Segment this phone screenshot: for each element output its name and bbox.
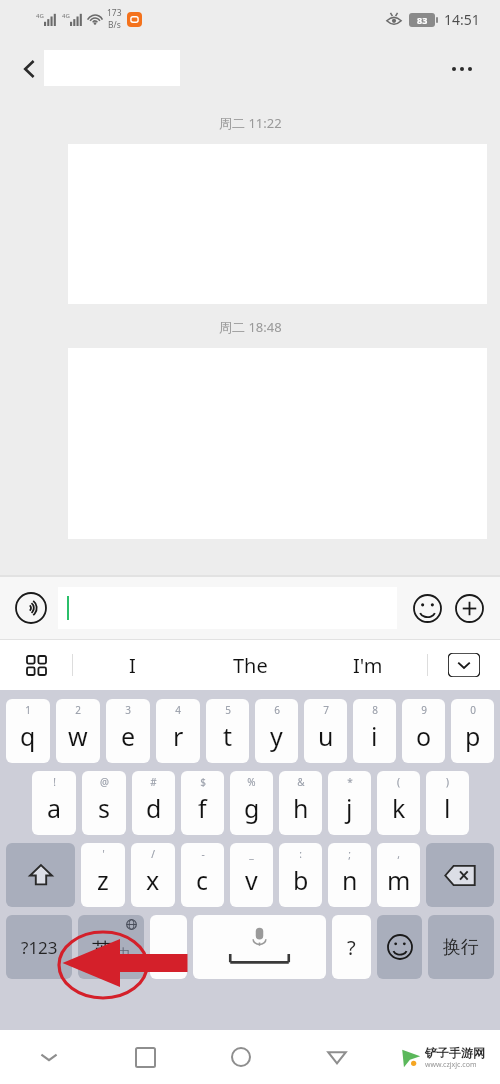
staticText: 4G [62,12,70,20]
button[interactable]: Symbols [6,915,72,979]
staticText: e [121,719,136,753]
button[interactable]: 4 [156,699,200,763]
button[interactable]: ? [332,915,371,979]
button[interactable]: & [279,771,322,835]
button[interactable]: Emoji [377,915,422,979]
button[interactable]: _ [230,843,273,907]
button[interactable]: I'm [309,640,427,690]
staticText: b [293,863,309,897]
staticText: % [247,775,256,789]
button[interactable]: , [377,843,420,907]
button[interactable]: I [73,640,191,690]
staticText: v [245,863,258,897]
button[interactable]: Hide keyboard [0,1030,97,1084]
button[interactable]: Emoji [406,587,448,629]
button[interactable]: Home [193,1030,289,1084]
button[interactable]: 7 [304,699,347,763]
button[interactable]: Switch language [78,915,144,979]
staticText: 3 [125,703,131,717]
button[interactable]: 2 [56,699,100,763]
button[interactable]: @ [82,771,126,835]
staticText: j [346,791,353,825]
button[interactable]: 1 [6,699,50,763]
staticText: * [347,775,353,789]
button[interactable]: Back [289,1030,385,1084]
button[interactable]: Keyboard menu [0,640,72,690]
button[interactable]: Backspace [426,843,494,907]
staticText: & [297,775,305,789]
staticText: h [293,791,309,825]
staticText: f [198,791,207,825]
button[interactable]: ( [377,771,420,835]
staticText: B/s [108,19,121,31]
button[interactable]: Key [150,915,187,979]
button[interactable]: Hide keyboard [428,640,500,690]
staticText: m [387,863,411,897]
staticText: 14:51 [444,10,480,29]
staticText: 6 [274,703,280,717]
button[interactable]: : [279,843,322,907]
button[interactable]: * [328,771,371,835]
button[interactable]: 9 [402,699,445,763]
button[interactable]: % [230,771,273,835]
staticText: u [318,719,334,753]
button[interactable]: More [448,587,490,629]
button[interactable]: Back [8,47,52,91]
staticText: ?123 [21,936,58,959]
button[interactable]: 3 [106,699,150,763]
staticText: k [392,791,406,825]
button[interactable]: Voice input [12,589,50,627]
button[interactable]: Space [193,915,326,979]
staticText: I [129,652,136,679]
staticText: o [416,719,432,753]
button[interactable]: Recents [97,1030,193,1084]
staticText: , [397,847,400,861]
staticText: 173 [107,7,122,19]
button[interactable]: 8 [353,699,396,763]
staticText: 1 [25,703,31,717]
button[interactable]: Shift [6,843,75,907]
staticText: ! [53,775,56,789]
staticText: @ [100,775,109,789]
button[interactable]: 0 [451,699,494,763]
button[interactable]: The [191,640,309,690]
button[interactable]: # [132,771,175,835]
staticText: www.czjxjc.com [425,1060,477,1070]
staticText: 0 [470,703,476,717]
staticText: : [299,847,302,861]
button[interactable]: / [131,843,175,907]
staticText: x [146,863,160,897]
staticText: z [97,863,109,897]
button[interactable]: ; [328,843,371,907]
staticText: The [233,652,268,679]
staticText: 83 [417,14,428,26]
staticText: 9 [421,703,427,717]
staticText: c [196,863,209,897]
button[interactable]: Enter [428,915,494,979]
staticText: y [270,719,283,753]
button[interactable]: 6 [255,699,298,763]
staticText: a [47,791,62,825]
button[interactable]: - [181,843,224,907]
staticText: I'm [353,652,383,679]
staticText: d [146,791,162,825]
button[interactable]: $ [181,771,224,835]
staticText: 7 [323,703,329,717]
button[interactable] [58,587,397,629]
button[interactable]: More options [440,47,484,91]
button[interactable]: 5 [206,699,249,763]
staticText: # [150,775,157,789]
button[interactable]: ) [426,771,469,835]
staticText: 周二 18:48 [219,318,282,336]
staticText: g [244,791,260,825]
staticText: 英 [92,938,112,963]
staticText: / [151,847,155,861]
staticText: /中 [112,944,130,962]
staticText: 4 [175,703,181,717]
button[interactable]: ' [81,843,125,907]
button[interactable]: ! [32,771,76,835]
staticText: 换行 [443,936,479,959]
